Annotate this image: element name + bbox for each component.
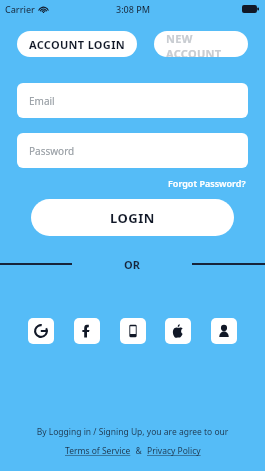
button[interactable]: Sign in with Facebook	[74, 318, 100, 344]
button[interactable]: LOGIN	[31, 199, 234, 236]
staticText: By Logging in / Signing Up, you are agre…	[10, 426, 255, 438]
button[interactable]: Sign in with Apple	[165, 318, 191, 344]
staticText: Privacy Policy	[147, 445, 201, 457]
staticText: 3:08 PM	[116, 3, 150, 15]
button[interactable]: NEW ACCOUNT	[154, 31, 248, 57]
button[interactable]: Email	[17, 83, 248, 118]
button[interactable]: Privacy Policy	[147, 445, 201, 457]
button[interactable]: Sign in with phone number	[120, 318, 146, 344]
staticText: Email	[29, 94, 55, 108]
staticText: Password	[29, 144, 75, 158]
button[interactable]: ACCOUNT LOGIN	[17, 31, 137, 57]
staticText: ACCOUNT LOGIN	[29, 37, 125, 52]
staticText: &	[131, 445, 147, 457]
staticText: Forgot Password?	[168, 177, 246, 189]
button[interactable]: Password	[17, 133, 248, 168]
button[interactable]: Terms of Service	[65, 445, 131, 457]
button[interactable]: Sign in with Google	[28, 318, 54, 344]
staticText: Terms of Service	[65, 445, 131, 457]
button[interactable]: Sign in as guest	[211, 318, 237, 344]
staticText: NEW ACCOUNT	[166, 31, 236, 57]
staticText: LOGIN	[110, 209, 155, 227]
staticText: OR	[124, 257, 140, 271]
staticText: Carrier	[5, 3, 35, 15]
button[interactable]: Forgot Password?	[166, 175, 248, 191]
